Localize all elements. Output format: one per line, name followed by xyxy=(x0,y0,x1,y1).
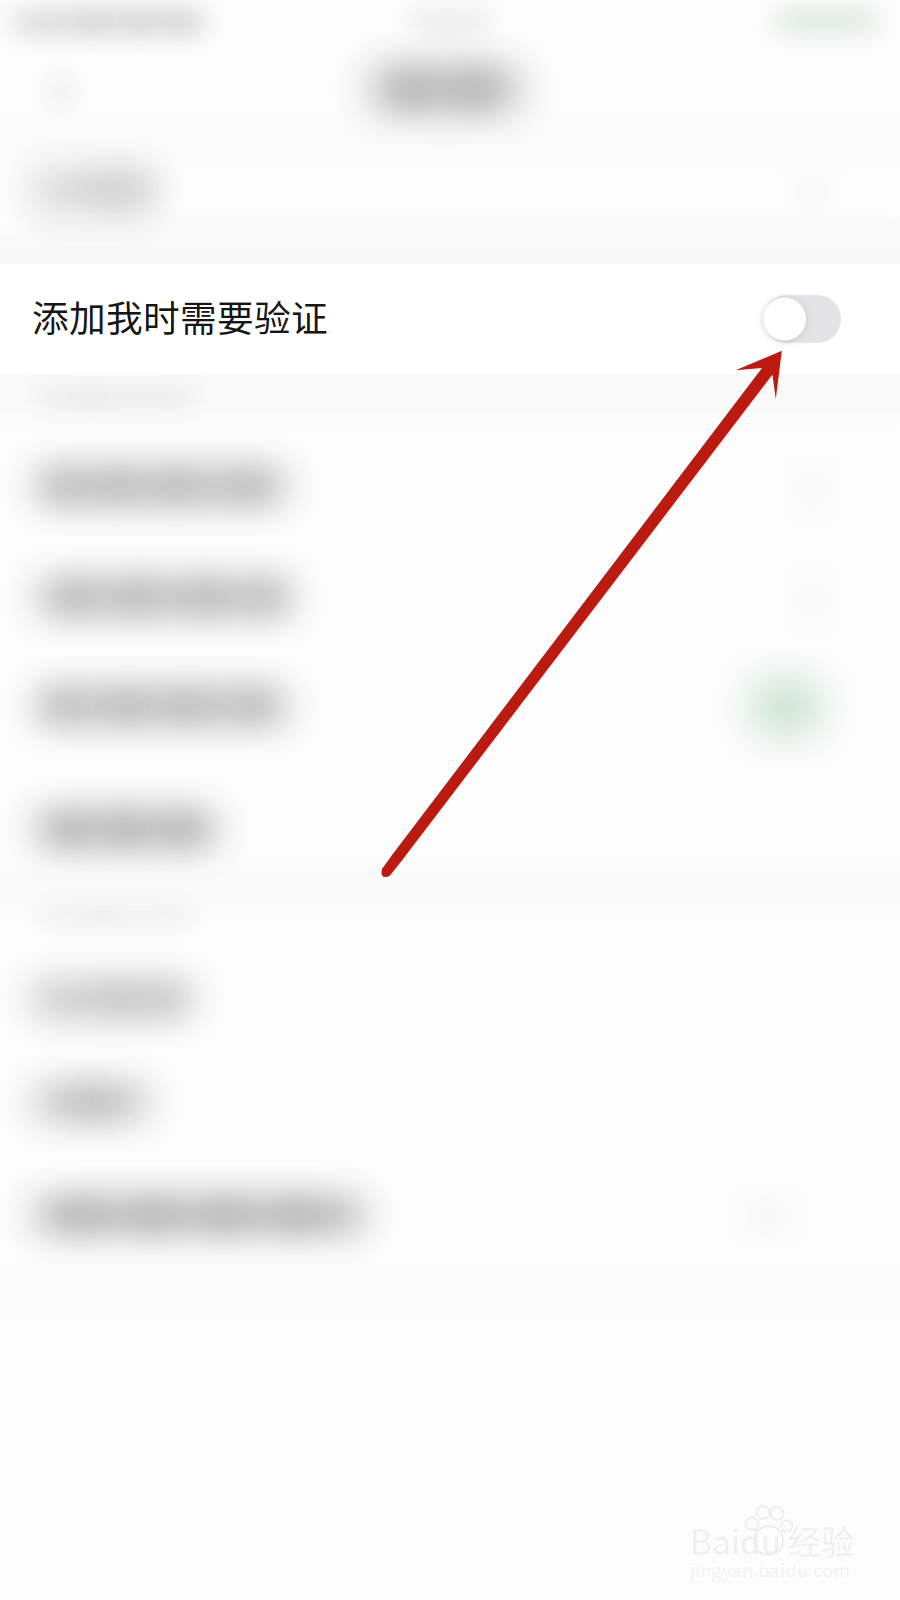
staticText: Baidu 经验 xyxy=(690,1516,854,1564)
button[interactable]: 添加我时需要验证 xyxy=(0,264,900,374)
staticText: jingyan.baidu.com xyxy=(690,1555,850,1582)
staticText: 添加我时需要验证 xyxy=(32,289,328,343)
